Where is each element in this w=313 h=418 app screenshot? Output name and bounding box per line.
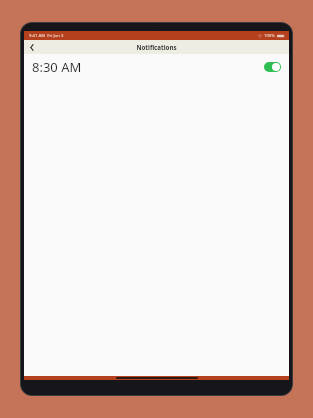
staticText: 100% bbox=[264, 33, 275, 39]
staticText: 8:30 AM bbox=[32, 58, 82, 76]
button[interactable]: Alarm enabled bbox=[264, 62, 281, 72]
button[interactable]: Back bbox=[24, 40, 40, 54]
staticText: 9:41 AM Fri Jun 3 bbox=[29, 33, 64, 39]
button[interactable]: 8:30 AM bbox=[24, 54, 289, 80]
staticText: Notifications bbox=[136, 43, 177, 51]
